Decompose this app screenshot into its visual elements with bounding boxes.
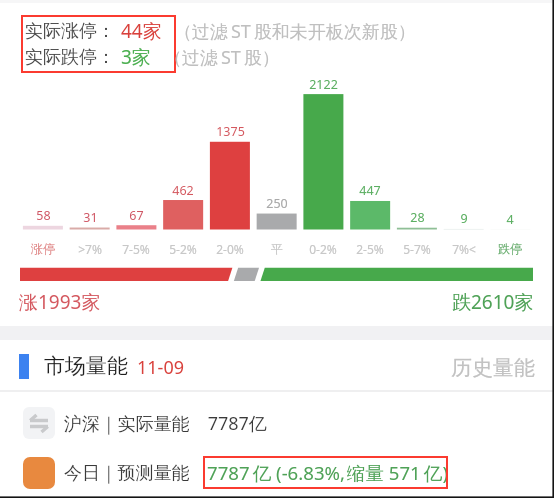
- staticText: 2-0%: [216, 241, 244, 257]
- staticText: 跌2610家: [452, 289, 534, 315]
- other: Switch market: [23, 407, 55, 439]
- staticText: 7-5%: [122, 241, 150, 257]
- staticText: 44家: [121, 18, 162, 44]
- staticText: 实际跌停：: [25, 46, 115, 69]
- staticText: 67: [129, 207, 144, 224]
- staticText: 31: [83, 209, 98, 226]
- staticText: 9: [460, 210, 468, 227]
- staticText: 涨停: [31, 241, 55, 256]
- staticText: 58: [36, 207, 51, 224]
- staticText: 实际涨停：: [25, 20, 115, 43]
- staticText: 250: [266, 195, 288, 212]
- staticText: 447: [359, 182, 381, 199]
- button[interactable]: 今日｜预测量能: [0, 453, 554, 493]
- staticText: 今日｜预测量能: [64, 462, 190, 485]
- staticText: 沪深｜实际量能 7787亿: [64, 411, 267, 436]
- button[interactable]: 市场量能: [0, 349, 554, 383]
- staticText: 市场量能: [44, 353, 128, 379]
- staticText: 7787 亿 (-6.83%, 缩量 571 亿): [207, 460, 448, 485]
- staticText: 平: [271, 241, 283, 256]
- button[interactable]: 历史量能: [0, 355, 535, 381]
- staticText: （过滤 ST 股）: [164, 45, 280, 70]
- staticText: 历史量能: [451, 355, 535, 381]
- staticText: 涨1993家: [19, 289, 101, 315]
- staticText: >7%: [78, 241, 102, 257]
- staticText: 4: [506, 211, 514, 228]
- staticText: （过滤 ST 股和未开板次新股）: [174, 19, 416, 44]
- staticText: 11-09: [137, 355, 184, 380]
- staticText: 5-2%: [169, 241, 197, 257]
- staticText: 462: [172, 182, 194, 199]
- staticText: 2122: [309, 76, 338, 93]
- button[interactable]: Switch market: [0, 403, 554, 443]
- staticText: 2-5%: [356, 241, 384, 257]
- staticText: 28: [410, 209, 425, 226]
- staticText: 0-2%: [309, 241, 337, 257]
- staticText: 跌停: [498, 241, 522, 256]
- staticText: 1375: [216, 123, 245, 140]
- staticText: 3家: [121, 44, 151, 70]
- staticText: 5-7%: [403, 241, 431, 257]
- staticText: 7%<: [452, 241, 476, 257]
